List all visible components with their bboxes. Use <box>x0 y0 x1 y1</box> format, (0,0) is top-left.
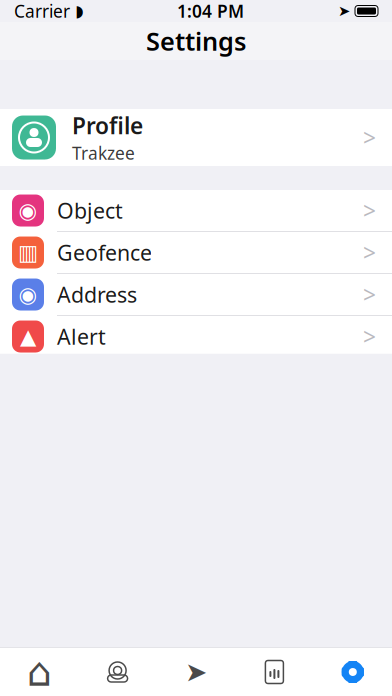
staticText: Trakzee <box>72 141 135 164</box>
button[interactable]: Home <box>0 648 78 696</box>
button[interactable]: Reports <box>235 648 314 696</box>
staticText: ◉ <box>18 282 37 307</box>
staticText: Alert <box>57 322 106 351</box>
staticText: Profile <box>72 110 143 140</box>
staticText: > <box>363 195 376 225</box>
staticText: > <box>363 122 376 152</box>
staticText: ◗ <box>75 2 83 20</box>
staticText: ➤ <box>338 3 350 19</box>
staticText: 1:04 PM <box>177 0 244 22</box>
staticText: Object <box>57 196 123 225</box>
staticText: Settings <box>146 24 246 58</box>
staticText: ➤ <box>185 657 207 687</box>
button[interactable]: Profile <box>0 109 392 166</box>
button[interactable]: ▲ <box>0 316 392 358</box>
button[interactable]: Navigate <box>157 648 235 696</box>
staticText: Address <box>57 280 137 309</box>
staticText: > <box>363 237 376 267</box>
staticText: ⌂ <box>27 649 52 695</box>
button[interactable]: Places <box>78 648 157 696</box>
staticText: > <box>363 321 376 351</box>
staticText: Carrier <box>14 0 70 22</box>
staticText: Geofence <box>57 238 152 267</box>
staticText: ▲ <box>20 324 36 349</box>
staticText: > <box>363 279 376 309</box>
button[interactable]: Settings <box>314 648 392 696</box>
staticText: ▥ <box>18 240 38 265</box>
staticText: ◉ <box>18 198 37 223</box>
button[interactable]: ◉ <box>0 190 392 232</box>
button[interactable]: ▥ <box>0 232 392 274</box>
button[interactable]: ◉ <box>0 274 392 316</box>
